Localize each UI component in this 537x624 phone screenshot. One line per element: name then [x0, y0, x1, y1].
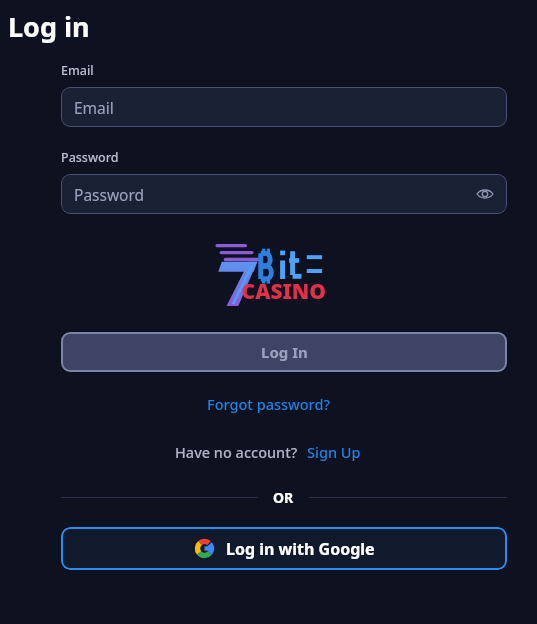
- button[interactable]: Show password: [474, 183, 496, 205]
- staticText: Email: [61, 62, 94, 79]
- staticText: Sign Up: [307, 442, 361, 462]
- staticText: CASINO: [241, 277, 326, 306]
- button[interactable]: Forgot password?: [203, 392, 334, 416]
- staticText: OR: [273, 488, 294, 507]
- staticText: Password: [61, 149, 119, 166]
- staticText: Log in with Google: [226, 538, 375, 560]
- button[interactable]: Google: [61, 527, 507, 570]
- button[interactable]: Email: [61, 87, 507, 127]
- button[interactable]: Log In: [61, 332, 507, 372]
- staticText: Password: [74, 184, 145, 205]
- other: Google: [194, 538, 215, 559]
- staticText: Email: [74, 97, 114, 118]
- button[interactable]: Sign Up: [305, 440, 363, 464]
- staticText: Forgot password?: [207, 394, 330, 414]
- staticText: Log in: [8, 8, 90, 45]
- staticText: Log In: [261, 342, 308, 362]
- button[interactable]: Password: [61, 174, 507, 214]
- staticText: Have no account?: [175, 442, 298, 462]
